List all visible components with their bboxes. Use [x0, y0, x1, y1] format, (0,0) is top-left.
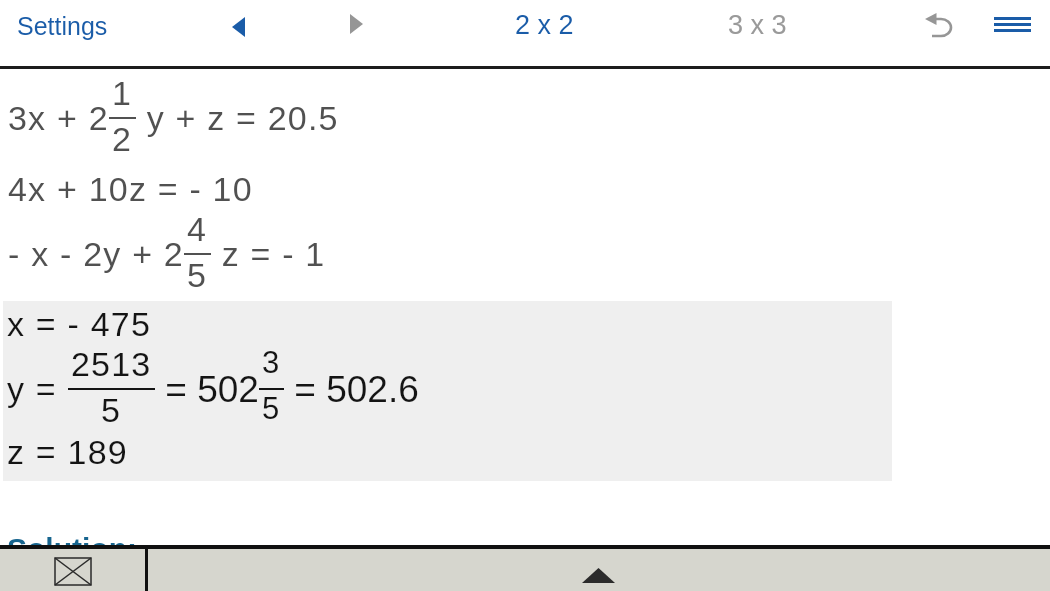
button[interactable]: Settings	[17, 12, 108, 40]
staticText: = 502	[155, 369, 259, 410]
staticText: 4x + 10z = - 10	[8, 170, 253, 208]
staticText: z = - 1	[211, 235, 326, 273]
button[interactable]	[994, 17, 1031, 32]
staticText: 2	[112, 120, 133, 158]
button[interactable]	[922, 11, 954, 38]
button[interactable]: 2 x 2	[515, 10, 574, 40]
staticText: z = 189	[7, 433, 128, 471]
button[interactable]: 3 x 3	[728, 10, 787, 40]
staticText: 4	[187, 210, 208, 248]
staticText: 5	[187, 256, 208, 294]
staticText: y =	[7, 370, 68, 408]
staticText: 3	[262, 345, 281, 380]
staticText: = 502.6	[284, 369, 419, 410]
staticText: 3x + 2	[8, 99, 109, 137]
staticText: - x - 2y + 2	[8, 235, 184, 273]
staticText: 1	[112, 74, 133, 112]
staticText: 5	[262, 391, 281, 426]
button[interactable]	[350, 14, 363, 34]
button[interactable]	[232, 17, 245, 37]
button[interactable]	[55, 558, 91, 585]
staticText: y + z = 20.5	[136, 99, 339, 137]
staticText: Solution:	[7, 532, 137, 566]
staticText: 2513	[71, 345, 152, 383]
staticText: 5	[101, 391, 122, 429]
button[interactable]	[582, 568, 615, 583]
staticText: x = - 475	[7, 305, 152, 343]
